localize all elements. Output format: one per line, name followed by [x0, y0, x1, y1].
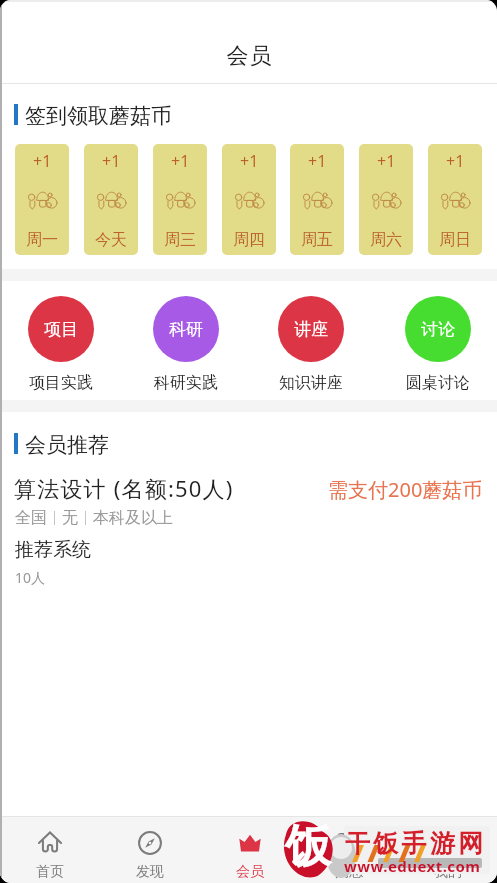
staticText: 饭	[285, 818, 331, 876]
staticText: 签到领取蘑菇币	[25, 103, 172, 129]
staticText: 周一	[26, 230, 58, 250]
button[interactable]: 算法设计 (名额:50人)	[0, 466, 497, 591]
staticText: +1	[102, 150, 121, 172]
staticText: 干饭手游网	[345, 828, 487, 859]
staticText: 会员	[236, 863, 264, 881]
staticText: 无	[62, 508, 78, 528]
staticText: 项目实践	[29, 373, 93, 393]
staticText: +1	[240, 150, 259, 172]
staticText: 周日	[439, 230, 471, 250]
staticText: 发现	[136, 863, 164, 881]
button[interactable]: +1	[84, 144, 138, 255]
button[interactable]: 我的	[398, 817, 497, 883]
button[interactable]: 消息	[299, 817, 398, 883]
staticText: 项目	[44, 319, 78, 340]
button[interactable]: 首页	[0, 817, 100, 883]
staticText: +1	[377, 150, 396, 172]
button[interactable]: +1	[15, 144, 69, 255]
staticText: www.eduext.com	[344, 856, 481, 876]
staticText: 会员	[226, 42, 272, 70]
staticText: 周三	[164, 230, 196, 250]
staticText: 科研实践	[154, 373, 218, 393]
button[interactable]: 讲座	[263, 296, 359, 393]
staticText: +1	[446, 150, 465, 172]
staticText: 今天	[95, 230, 127, 250]
staticText: 讨论	[421, 319, 455, 340]
button[interactable]: 项目	[13, 296, 109, 393]
button[interactable]: +1	[153, 144, 207, 255]
staticText: 我的	[434, 863, 462, 881]
staticText: 消息	[335, 863, 363, 881]
staticText: 算法设计 (名额:50人)	[14, 473, 234, 503]
staticText: 讲座	[294, 319, 328, 340]
staticText: 周六	[370, 230, 402, 250]
staticText: 10人	[15, 568, 46, 587]
staticText: 科研	[169, 319, 203, 340]
button[interactable]: 会员	[200, 817, 299, 883]
button[interactable]: +1	[290, 144, 344, 255]
staticText: +1	[308, 150, 327, 172]
button[interactable]: 发现	[100, 817, 200, 883]
staticText: 全国	[15, 508, 47, 528]
staticText: 知识讲座	[279, 373, 343, 393]
staticText: +1	[33, 150, 52, 172]
staticText: 本科及以上	[93, 508, 173, 528]
staticText: 会员推荐	[25, 432, 109, 458]
button[interactable]: +1	[428, 144, 482, 255]
staticText: 周四	[233, 230, 265, 250]
staticText: 推荐系统	[15, 538, 91, 562]
staticText: 圆桌讨论	[406, 373, 470, 393]
button[interactable]: +1	[222, 144, 276, 255]
staticText: 需支付200蘑菇币	[328, 476, 483, 503]
button[interactable]: +1	[359, 144, 413, 255]
button[interactable]: 科研	[138, 296, 234, 393]
staticText: +1	[171, 150, 190, 172]
staticText: 周五	[301, 230, 333, 250]
button[interactable]: 讨论	[390, 296, 486, 393]
staticText: 首页	[36, 863, 64, 881]
